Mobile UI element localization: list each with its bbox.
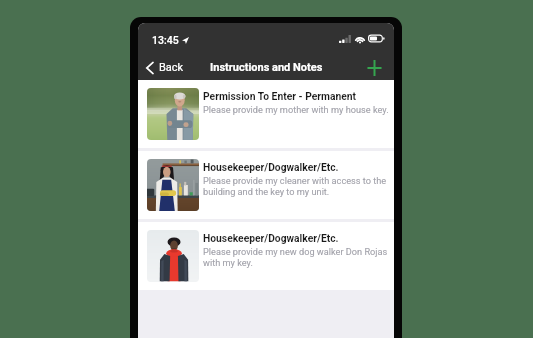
staticText: Permission To Enter - Permanent [203,90,357,102]
button[interactable]: Housekeeper/Dogwalker/Etc. [138,222,394,290]
staticText: Back [159,61,184,74]
staticText: Housekeeper/Dogwalker/Etc. [203,232,339,244]
staticText: Please provide my mother with my house k… [203,104,389,115]
staticText: Instructions and Notes [210,61,323,74]
staticText: Please provide my cleaner with access to… [203,175,387,197]
button[interactable]: Housekeeper/Dogwalker/Etc. [138,151,394,219]
staticText: Please provide my new dog walker Don Roj… [203,246,388,268]
staticText: 13:45 [152,34,179,46]
button[interactable]: Add note [360,57,394,79]
button[interactable]: Permission To Enter - Permanent [138,80,394,148]
button[interactable]: Back [138,58,190,77]
staticText: Housekeeper/Dogwalker/Etc. [203,161,339,173]
